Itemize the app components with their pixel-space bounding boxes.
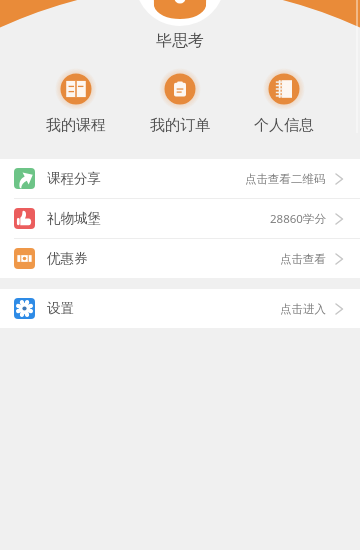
button[interactable]: 设置: [0, 289, 360, 328]
staticText: 点击查看二维码: [245, 172, 326, 186]
staticText: 我的课程: [46, 116, 106, 135]
staticText: 点击查看: [280, 252, 326, 266]
button[interactable]: Avatar: [135, 0, 225, 26]
staticText: 个人信息: [254, 116, 314, 135]
button[interactable]: 礼物城堡: [0, 199, 360, 238]
staticText: 课程分享: [47, 170, 101, 187]
staticText: 毕思考: [0, 31, 360, 51]
staticText: 礼物城堡: [47, 210, 101, 227]
button[interactable]: 我的课程: [24, 68, 128, 135]
button[interactable]: 个人信息: [232, 68, 336, 135]
staticText: 设置: [47, 300, 74, 317]
button[interactable]: 课程分享: [0, 159, 360, 198]
staticText: 我的订单: [150, 116, 210, 135]
staticText: 28860学分: [270, 211, 326, 227]
staticText: 优惠券: [47, 250, 88, 267]
staticText: 点击进入: [280, 302, 326, 316]
button[interactable]: 我的订单: [128, 68, 232, 135]
button[interactable]: 优惠券: [0, 239, 360, 278]
